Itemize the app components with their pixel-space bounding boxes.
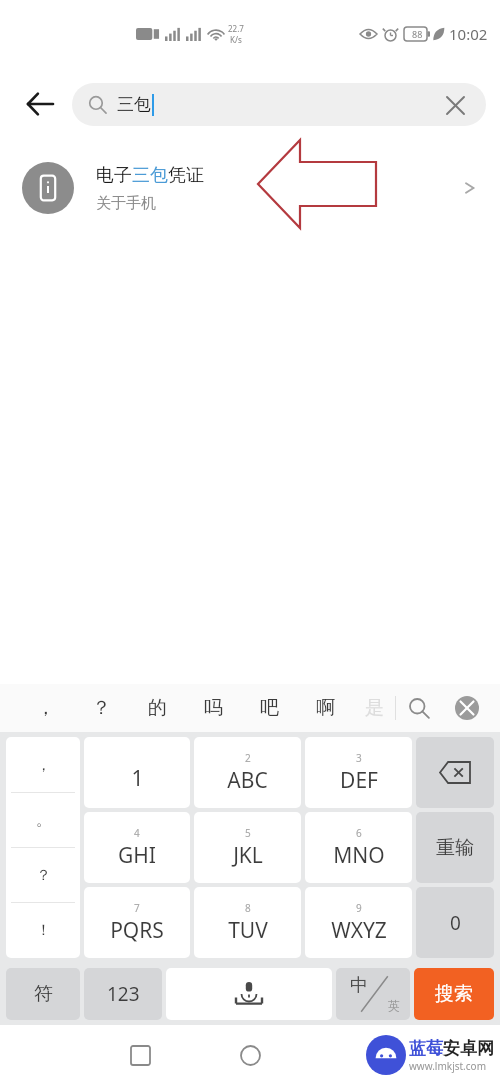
staticText: 123 [107, 981, 140, 1007]
button[interactable]: 啊 [297, 684, 353, 732]
staticText: MNO [333, 841, 385, 870]
button[interactable]: 的 [129, 684, 185, 732]
staticText: K/s [230, 34, 242, 45]
staticText: 蓝莓 [409, 1038, 443, 1059]
staticText: 符 [34, 982, 53, 1006]
staticText: 1 [131, 764, 144, 793]
button[interactable]: Clear [440, 90, 470, 120]
button[interactable]: 符 [6, 968, 80, 1020]
button[interactable]: ？ [6, 848, 80, 903]
staticText: 电子三包凭证 [96, 164, 204, 187]
button[interactable]: ， [6, 737, 80, 793]
button[interactable]: Space, voice input [166, 968, 332, 1020]
button[interactable]: ！ [6, 903, 80, 958]
staticText: ABC [227, 766, 268, 795]
staticText: TUV [228, 916, 268, 945]
staticText: 英 [388, 998, 400, 1013]
staticText: 中 [350, 974, 368, 997]
staticText: 88 [412, 28, 423, 40]
button[interactable]: 吧 [241, 684, 297, 732]
button[interactable]: Close keyboard [442, 684, 492, 732]
staticText: 2 [245, 751, 251, 765]
button[interactable]: ， [18, 684, 73, 732]
button[interactable]: Chinese English toggle [336, 968, 410, 1020]
button[interactable]: 。 [6, 793, 80, 848]
button[interactable]: 1 [84, 737, 190, 808]
button[interactable]: 3 [305, 737, 412, 808]
button[interactable]: 8 [194, 887, 301, 958]
button[interactable]: 搜索 [414, 968, 494, 1020]
staticText: www.lmkjst.com [409, 1059, 486, 1073]
button[interactable]: ？ [73, 684, 129, 732]
button[interactable]: Search [396, 684, 442, 732]
button[interactable]: 电子三包凭证 [0, 140, 500, 236]
staticText: 8 [245, 901, 251, 915]
staticText: 啊 [316, 696, 335, 720]
button[interactable]: 0 [416, 887, 494, 958]
staticText: 搜索 [435, 982, 473, 1006]
staticText: ， [36, 756, 51, 775]
staticText: ？ [92, 696, 111, 720]
button[interactable]: Backspace [416, 737, 494, 808]
button[interactable]: 吗 [185, 684, 241, 732]
staticText: 3 [356, 751, 362, 765]
staticText: ？ [36, 866, 51, 885]
staticText: ， [36, 696, 55, 720]
staticText: 7 [134, 901, 140, 915]
staticText: 0 [450, 910, 461, 936]
staticText: ！ [36, 921, 51, 940]
staticText: 4 [134, 826, 140, 840]
button[interactable]: 三包 [72, 83, 486, 126]
button[interactable]: 7 [84, 887, 190, 958]
staticText: 三包 [117, 94, 151, 115]
staticText: 重输 [436, 836, 474, 860]
staticText: 9 [356, 901, 362, 915]
staticText: 吗 [204, 696, 223, 720]
staticText: 的 [148, 696, 167, 720]
staticText: 是 [365, 696, 384, 720]
staticText: JKL [233, 841, 263, 870]
staticText: 吧 [260, 696, 279, 720]
button[interactable]: 123 [84, 968, 162, 1020]
staticText: 10:02 [449, 24, 488, 44]
staticText: 5 [245, 826, 251, 840]
button[interactable]: 重输 [416, 812, 494, 883]
staticText: 关于手机 [96, 194, 156, 213]
staticText: WXYZ [331, 916, 387, 945]
button[interactable]: 2 [194, 737, 301, 808]
staticText: 6 [356, 826, 362, 840]
button[interactable]: 4 [84, 812, 190, 883]
staticText: 安卓网 [443, 1038, 494, 1059]
button[interactable]: 6 [305, 812, 412, 883]
button[interactable]: 9 [305, 887, 412, 958]
button[interactable]: Back [14, 78, 66, 130]
staticText: DEF [340, 766, 378, 795]
staticText: PQRS [110, 916, 164, 945]
staticText: GHI [118, 841, 156, 870]
staticText: 22.7 [228, 23, 244, 34]
button[interactable]: Home [228, 1033, 272, 1077]
button[interactable]: 5 [194, 812, 301, 883]
staticText: 。 [36, 811, 51, 830]
button[interactable]: Recents [118, 1033, 162, 1077]
